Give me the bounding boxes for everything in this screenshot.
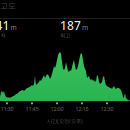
staticText: 11:45 [25,105,38,113]
staticText: 최고 [60,32,70,39]
staticText: 12:00 [50,105,63,113]
staticText: 12:15 [75,105,88,113]
staticText: 12:30 [100,105,113,113]
staticText: m [10,23,16,32]
staticText: 11:30 [0,105,13,113]
staticText: 고도 [0,1,16,11]
staticText: 최저 [0,32,5,39]
staticText: 시간(오전/오후) [47,117,83,125]
staticText: m [82,23,88,32]
staticText: 187 [60,17,81,33]
staticText: 41 [0,17,9,33]
